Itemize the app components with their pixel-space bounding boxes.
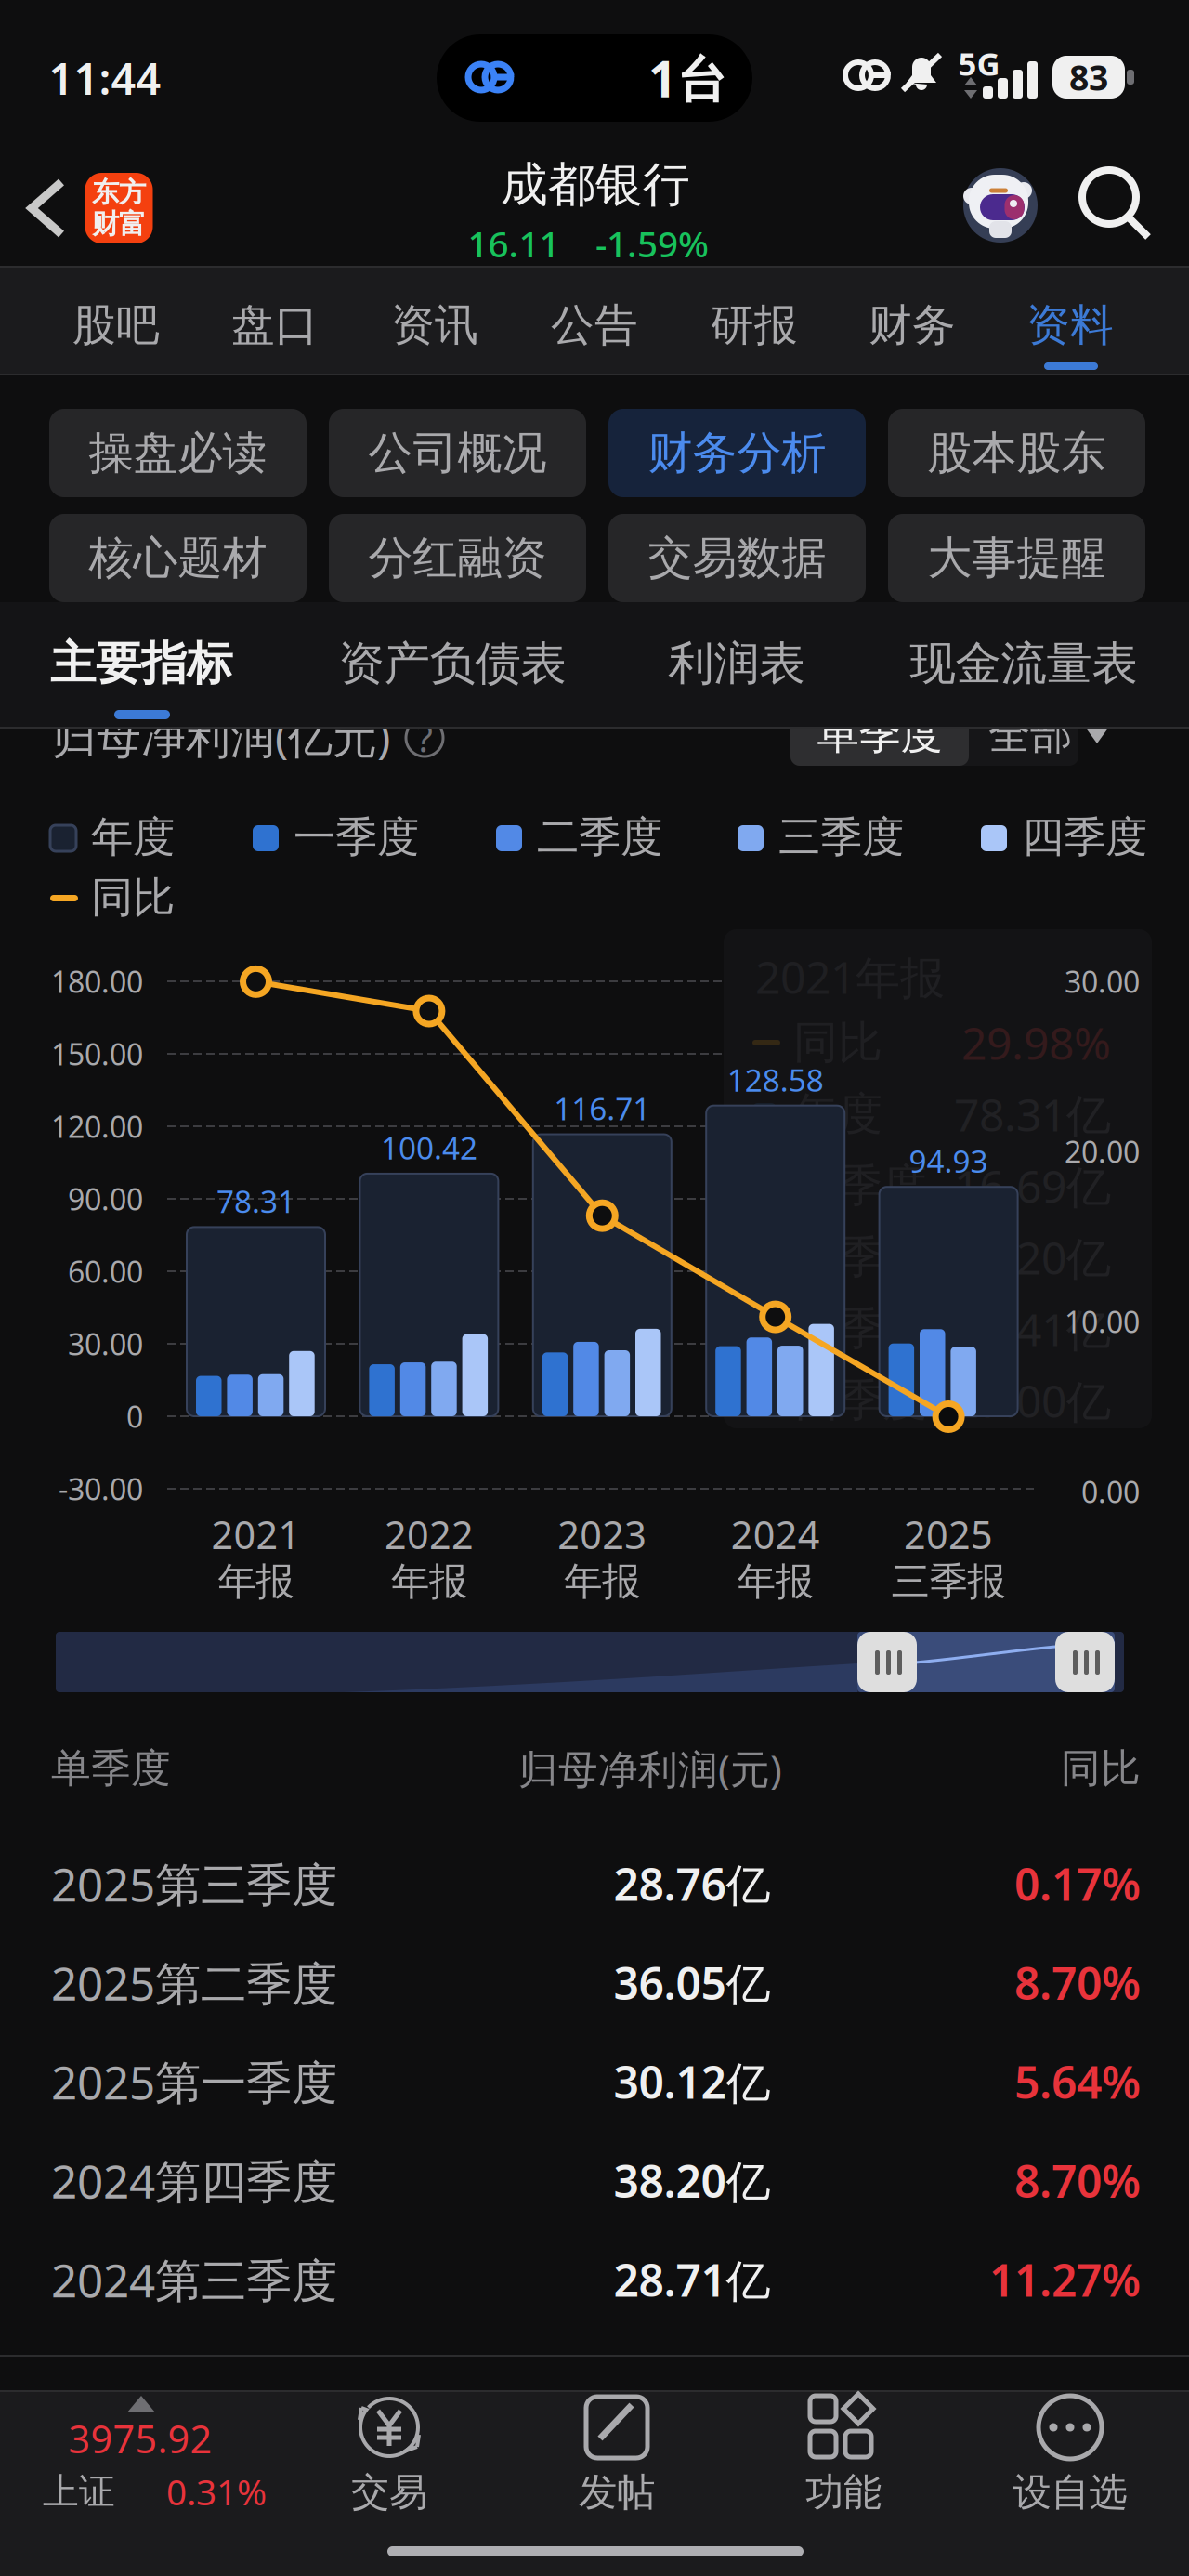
staticText: 分红融资 [368, 531, 547, 585]
staticText: 四季度 [1022, 811, 1147, 863]
staticText: 年度 [91, 811, 175, 863]
staticText: 0.31% [166, 2468, 267, 2515]
button[interactable]: 交易数据 [0, 0, 1189, 2576]
staticText: 94.93 [909, 1140, 988, 1181]
staticText: 三季度 [793, 1301, 927, 1356]
button[interactable]: 东方财富 [0, 0, 1189, 2576]
staticText: 2024第三季度 [51, 2249, 337, 2310]
button[interactable]: 2024第三季度 [0, 0, 1189, 2576]
button[interactable]: 股吧 [0, 0, 1189, 2576]
staticText: 年度 [793, 1087, 882, 1142]
staticText: 20.00 [1065, 1132, 1140, 1171]
staticText: 财务 [869, 299, 956, 352]
staticText: 股本股东 [928, 426, 1106, 480]
staticText: 83 [1069, 54, 1108, 100]
staticText: 5G [958, 42, 1000, 85]
staticText: 2023 [558, 1509, 647, 1560]
button[interactable]: 公告 [0, 0, 1189, 2576]
button[interactable]: 财务 [0, 0, 1189, 2576]
staticText: 120.00 [51, 1107, 143, 1146]
staticText: 公告 [551, 299, 638, 352]
staticText: 公司概况 [368, 426, 547, 480]
staticText: 100.42 [381, 1127, 477, 1168]
staticText: ? [417, 713, 432, 762]
staticText: -30.00 [59, 1469, 143, 1509]
button[interactable]: 核心题材 [0, 0, 1189, 2576]
staticText: 大事提醒 [928, 531, 1106, 585]
staticText: 8.70% [1014, 2151, 1141, 2210]
button[interactable]: 3975.92 [0, 0, 1189, 2576]
staticText: 年报 [737, 1558, 813, 1605]
button[interactable]: 研报 [0, 0, 1189, 2576]
button[interactable]: 单季度 [0, 0, 1189, 2576]
staticText: 三季度 [778, 811, 904, 863]
staticText: 同比 [1061, 1744, 1141, 1793]
button[interactable]: 财务分析 [0, 0, 1189, 2576]
staticText: 资产负债表 [339, 635, 566, 692]
staticText: 资讯 [391, 299, 478, 352]
staticText: 同比 [793, 1015, 882, 1070]
staticText: 17.20亿 [954, 1228, 1111, 1287]
staticText: 一季度 [793, 1158, 927, 1213]
staticText: 单季度 [817, 708, 942, 760]
button[interactable]: 资产负债表 [0, 0, 1189, 2576]
staticText: 2024 [731, 1509, 820, 1560]
staticText: 2025第三季度 [51, 1853, 337, 1914]
staticText: 交易数据 [648, 531, 826, 585]
button[interactable]: 功能 [0, 0, 1189, 2576]
staticText: 主要指标 [50, 635, 232, 692]
button[interactable]: 大事提醒 [0, 0, 1189, 2576]
staticText: -1.59% [595, 220, 709, 267]
staticText: 年报 [391, 1558, 467, 1605]
staticText: 上证 [43, 2469, 115, 2514]
staticText: 利润表 [668, 635, 805, 692]
staticText: 资料 [1026, 299, 1114, 352]
staticText: 16.11 [468, 220, 560, 267]
button[interactable]: 2025第二季度 [0, 0, 1189, 2576]
button[interactable]: 智能助手 [0, 0, 1189, 2576]
staticText: 同比 [91, 872, 175, 924]
button[interactable]: 发帖 [0, 0, 1189, 2576]
staticText: 38.20亿 [614, 2151, 771, 2210]
staticText: 30.00 [68, 1324, 143, 1364]
staticText: 2025第二季度 [51, 1952, 337, 2013]
staticText: 0.17% [1014, 1854, 1141, 1913]
staticText: 东方 [92, 176, 146, 209]
button[interactable]: 分红融资 [0, 0, 1189, 2576]
staticText: 年报 [218, 1558, 294, 1605]
staticText: 78.31亿 [954, 1085, 1111, 1144]
staticText: 10.00 [1065, 1302, 1140, 1341]
button[interactable]: 操盘必读 [0, 0, 1189, 2576]
staticText: 四季度 [793, 1373, 927, 1428]
staticText: 归母净利润(元) [518, 1742, 782, 1795]
button[interactable]: 现金流量表 [0, 0, 1189, 2576]
staticText: 11:44 [49, 49, 161, 107]
button[interactable]: 资讯 [0, 0, 1189, 2576]
staticText: 150.00 [51, 1034, 143, 1074]
staticText: 操盘必读 [89, 426, 267, 480]
staticText: 2021年报 [755, 947, 945, 1006]
button[interactable]: 2024第四季度 [0, 0, 1189, 2576]
button[interactable]: 搜索 [0, 0, 1189, 2576]
button[interactable]: 2025第一季度 [0, 0, 1189, 2576]
staticText: 28.76亿 [614, 1854, 771, 1913]
button[interactable]: 公司概况 [0, 0, 1189, 2576]
staticText: 36.05亿 [614, 1953, 771, 2012]
button[interactable]: 返回 [0, 0, 1189, 2576]
staticText: 2025 [904, 1509, 993, 1560]
button[interactable]: 全部 [0, 0, 1189, 2576]
staticText: 功能 [805, 2469, 882, 2516]
button[interactable]: 主要指标 [0, 0, 1189, 2576]
button[interactable]: 交易 [0, 0, 1189, 2576]
button[interactable]: 资料 [0, 0, 1189, 2576]
staticText: 8.70% [1014, 1953, 1141, 2012]
staticText: 2022 [384, 1509, 474, 1560]
button[interactable]: 股本股东 [0, 0, 1189, 2576]
button[interactable]: 2025第三季度 [0, 0, 1189, 2576]
staticText: 2021 [211, 1509, 301, 1560]
button[interactable]: 利润表 [0, 0, 1189, 2576]
staticText: 二季度 [793, 1230, 927, 1285]
staticText: 三季报 [891, 1558, 1006, 1605]
button[interactable]: 盘口 [0, 0, 1189, 2576]
button[interactable]: 设自选 [0, 0, 1189, 2576]
